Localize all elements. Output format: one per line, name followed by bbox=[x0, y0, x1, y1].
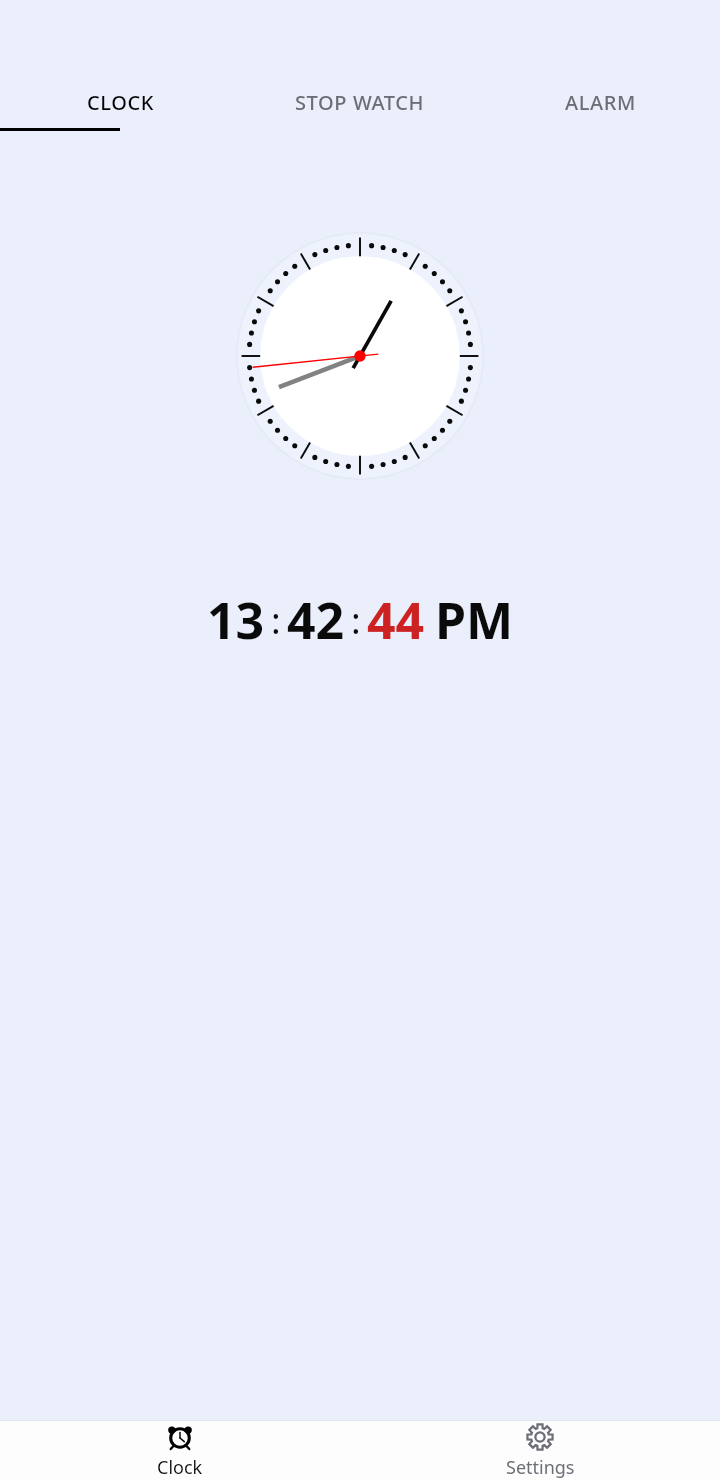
staticText: PM bbox=[435, 586, 514, 654]
staticText: STOP WATCH bbox=[295, 89, 425, 116]
staticText: ALARM bbox=[565, 89, 636, 116]
button[interactable]: CLOCK bbox=[0, 80, 240, 124]
other: Analog clock bbox=[236, 232, 484, 480]
staticText: Clock bbox=[157, 1455, 203, 1480]
button[interactable]: ALARM bbox=[480, 80, 720, 124]
staticText: : bbox=[351, 596, 361, 645]
staticText: : bbox=[271, 596, 281, 645]
staticText: 44 bbox=[367, 586, 425, 654]
button[interactable]: Settings bbox=[360, 1421, 720, 1480]
staticText: 13 bbox=[207, 586, 265, 654]
staticText: Settings bbox=[506, 1455, 575, 1480]
staticText: CLOCK bbox=[87, 89, 154, 116]
button[interactable]: Clock bbox=[0, 1421, 360, 1480]
button[interactable]: STOP WATCH bbox=[240, 80, 480, 124]
other: Settings bbox=[524, 1421, 556, 1453]
staticText: 42 bbox=[287, 586, 345, 654]
other: Clock bbox=[164, 1421, 196, 1453]
